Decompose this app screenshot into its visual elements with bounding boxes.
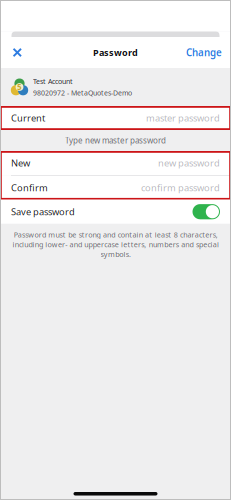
button[interactable]: Current [0, 106, 231, 130]
staticText: new password [158, 157, 220, 169]
button[interactable]: Confirm [0, 176, 231, 200]
staticText: Password [93, 46, 138, 59]
button[interactable]: New [0, 151, 231, 175]
staticText: confirm password [141, 181, 220, 194]
button[interactable]: Close [0, 37, 22, 68]
staticText: Type new master password [65, 135, 166, 146]
staticText: 5 [17, 82, 22, 92]
staticText: New [11, 157, 30, 169]
button[interactable]: Save password [0, 200, 231, 224]
button[interactable]: Change [177, 37, 231, 68]
staticText: Password must be strong and contain at l… [12, 230, 219, 259]
staticText: master password [146, 112, 220, 124]
staticText: Change [186, 46, 222, 59]
staticText: Test Account [33, 77, 73, 86]
staticText: Current [11, 112, 45, 124]
staticText: Save password [11, 205, 75, 218]
staticText: Confirm [11, 181, 48, 194]
staticText: 98020972 - MetaQuotes-Demo [33, 88, 132, 97]
